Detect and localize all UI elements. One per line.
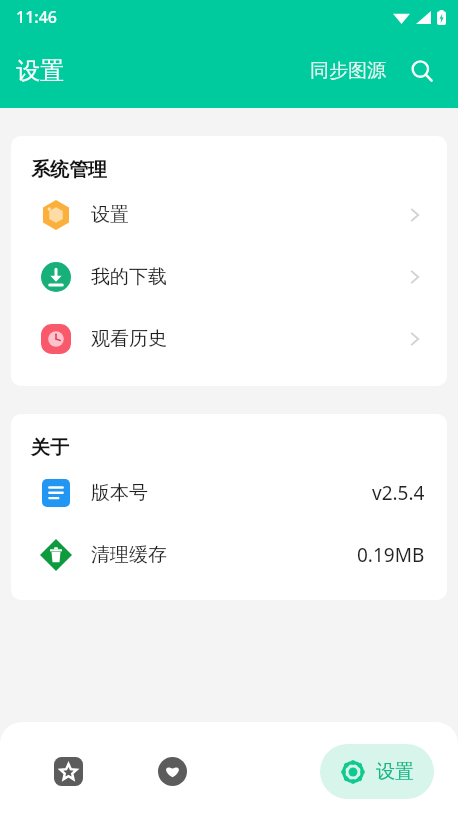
button[interactable]: 观看历史 [11,308,447,370]
staticText: 关于 [31,436,69,460]
staticText: 系统管理 [31,158,107,182]
staticText: 清理缓存 [91,543,167,567]
staticText: 版本号 [91,481,148,505]
button[interactable]: 版本号 [11,462,447,524]
staticText: 观看历史 [91,327,167,351]
button[interactable]: Likes [114,741,230,801]
staticText: v2.5.4 [372,480,425,506]
staticText: 0.19MB [357,542,425,568]
button[interactable]: Search [404,53,440,89]
button[interactable]: 设置 [320,744,434,799]
staticText: 设置 [16,56,64,86]
staticText: 我的下载 [91,265,167,289]
button[interactable]: 同步图源 [306,53,390,89]
button[interactable]: 我的下载 [11,246,447,308]
staticText: 设置 [91,203,129,227]
button[interactable]: 清理缓存 [11,524,447,586]
staticText: 同步图源 [310,59,386,83]
staticText: 11:46 [16,6,57,28]
staticText: 设置 [376,760,414,784]
button[interactable]: Favorites [22,741,114,801]
button[interactable]: 设置 [11,184,447,246]
